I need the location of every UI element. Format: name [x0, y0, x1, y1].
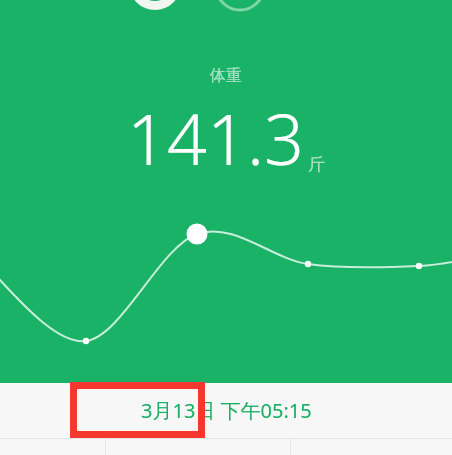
staticText: 3月13日 下午05:15 — [141, 397, 312, 424]
staticText: 体重 — [210, 66, 242, 86]
staticText: 141.3 — [127, 90, 304, 185]
staticText: 斤 — [308, 154, 325, 175]
other: Selected element highlight — [70, 382, 205, 438]
button[interactable]: 3月13日 下午05:15 — [0, 382, 452, 438]
